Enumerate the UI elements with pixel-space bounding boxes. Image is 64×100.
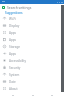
button[interactable]: About xyxy=(0,85,64,92)
staticText: About xyxy=(9,87,18,91)
staticText: Apps xyxy=(9,31,17,35)
staticText: Apps xyxy=(9,38,17,42)
button[interactable]: Search settings xyxy=(0,4,64,10)
staticText: Security xyxy=(9,66,21,70)
button[interactable]: Back xyxy=(6,92,19,100)
button[interactable]: Display xyxy=(0,22,64,29)
button[interactable]: System xyxy=(0,71,64,78)
staticText: Storage xyxy=(9,45,20,49)
button[interactable]: Storage xyxy=(0,43,64,50)
button[interactable]: Apps xyxy=(0,29,64,36)
button[interactable]: Apps xyxy=(0,50,64,57)
staticText: Date xyxy=(9,80,16,84)
button[interactable]: Home xyxy=(26,92,39,100)
staticText: Accessibility xyxy=(9,59,26,63)
button[interactable]: Apps xyxy=(0,36,64,43)
staticText: Wi-Fi xyxy=(9,17,16,21)
staticText: Search settings xyxy=(7,5,32,10)
staticText: Display xyxy=(9,24,20,28)
staticText: Suggestions xyxy=(5,11,23,15)
button[interactable]: Accessibility xyxy=(0,57,64,64)
staticText: Apps xyxy=(9,52,17,56)
staticText: System xyxy=(9,73,20,77)
button[interactable]: Wi-Fi xyxy=(0,15,64,22)
button[interactable]: Security xyxy=(0,64,64,71)
button[interactable]: Recents xyxy=(45,92,58,100)
button[interactable]: Date xyxy=(0,78,64,85)
